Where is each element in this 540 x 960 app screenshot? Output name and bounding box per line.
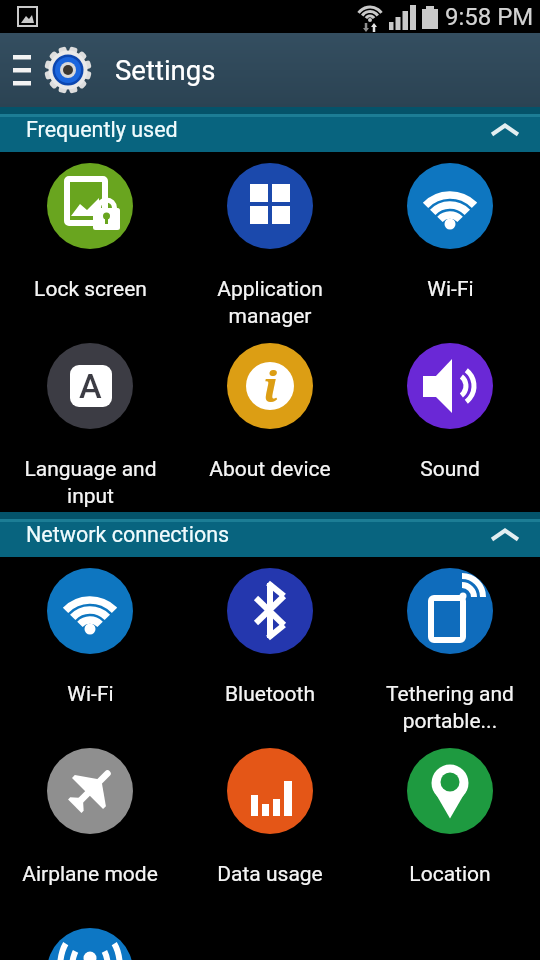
staticText: Lock screen — [34, 277, 147, 302]
button[interactable]: i — [180, 332, 360, 512]
staticText: About device — [209, 457, 331, 482]
button[interactable]: Lock screen — [0, 152, 180, 332]
button[interactable]: Wi-Fi — [0, 557, 180, 737]
button[interactable]: Location — [360, 737, 540, 917]
staticText: Application manager — [217, 277, 323, 328]
button[interactable]: A — [0, 332, 180, 512]
staticText: Wi-Fi — [67, 682, 114, 707]
staticText: Bluetooth — [225, 682, 315, 707]
staticText: 9:58 PM — [445, 3, 534, 31]
staticText: i — [263, 357, 278, 414]
staticText: Network connections — [26, 522, 230, 547]
button[interactable]: Application manager — [180, 152, 360, 332]
staticText: Location — [409, 862, 491, 887]
staticText: Sound — [420, 457, 480, 482]
staticText: Tethering and portable... — [386, 682, 514, 733]
staticText: A — [79, 366, 102, 406]
button[interactable] — [13, 53, 31, 87]
staticText: Language and input — [24, 457, 157, 508]
button[interactable]: Airplane mode — [0, 737, 180, 917]
staticText: Frequently used — [26, 117, 178, 142]
button[interactable]: NFC — [0, 917, 180, 960]
staticText: Settings — [115, 54, 216, 86]
button[interactable]: Bluetooth — [180, 557, 360, 737]
staticText: Data usage — [217, 862, 323, 887]
button[interactable]: Sound — [360, 332, 540, 512]
button[interactable]: Wi-Fi — [360, 152, 540, 332]
button[interactable]: Network connections — [0, 512, 540, 557]
staticText: Wi-Fi — [427, 277, 474, 302]
button[interactable]: Frequently used — [0, 107, 540, 152]
button[interactable]: Tethering and portable... — [360, 557, 540, 737]
button[interactable]: Data usage — [180, 737, 360, 917]
staticText: Airplane mode — [22, 862, 158, 887]
